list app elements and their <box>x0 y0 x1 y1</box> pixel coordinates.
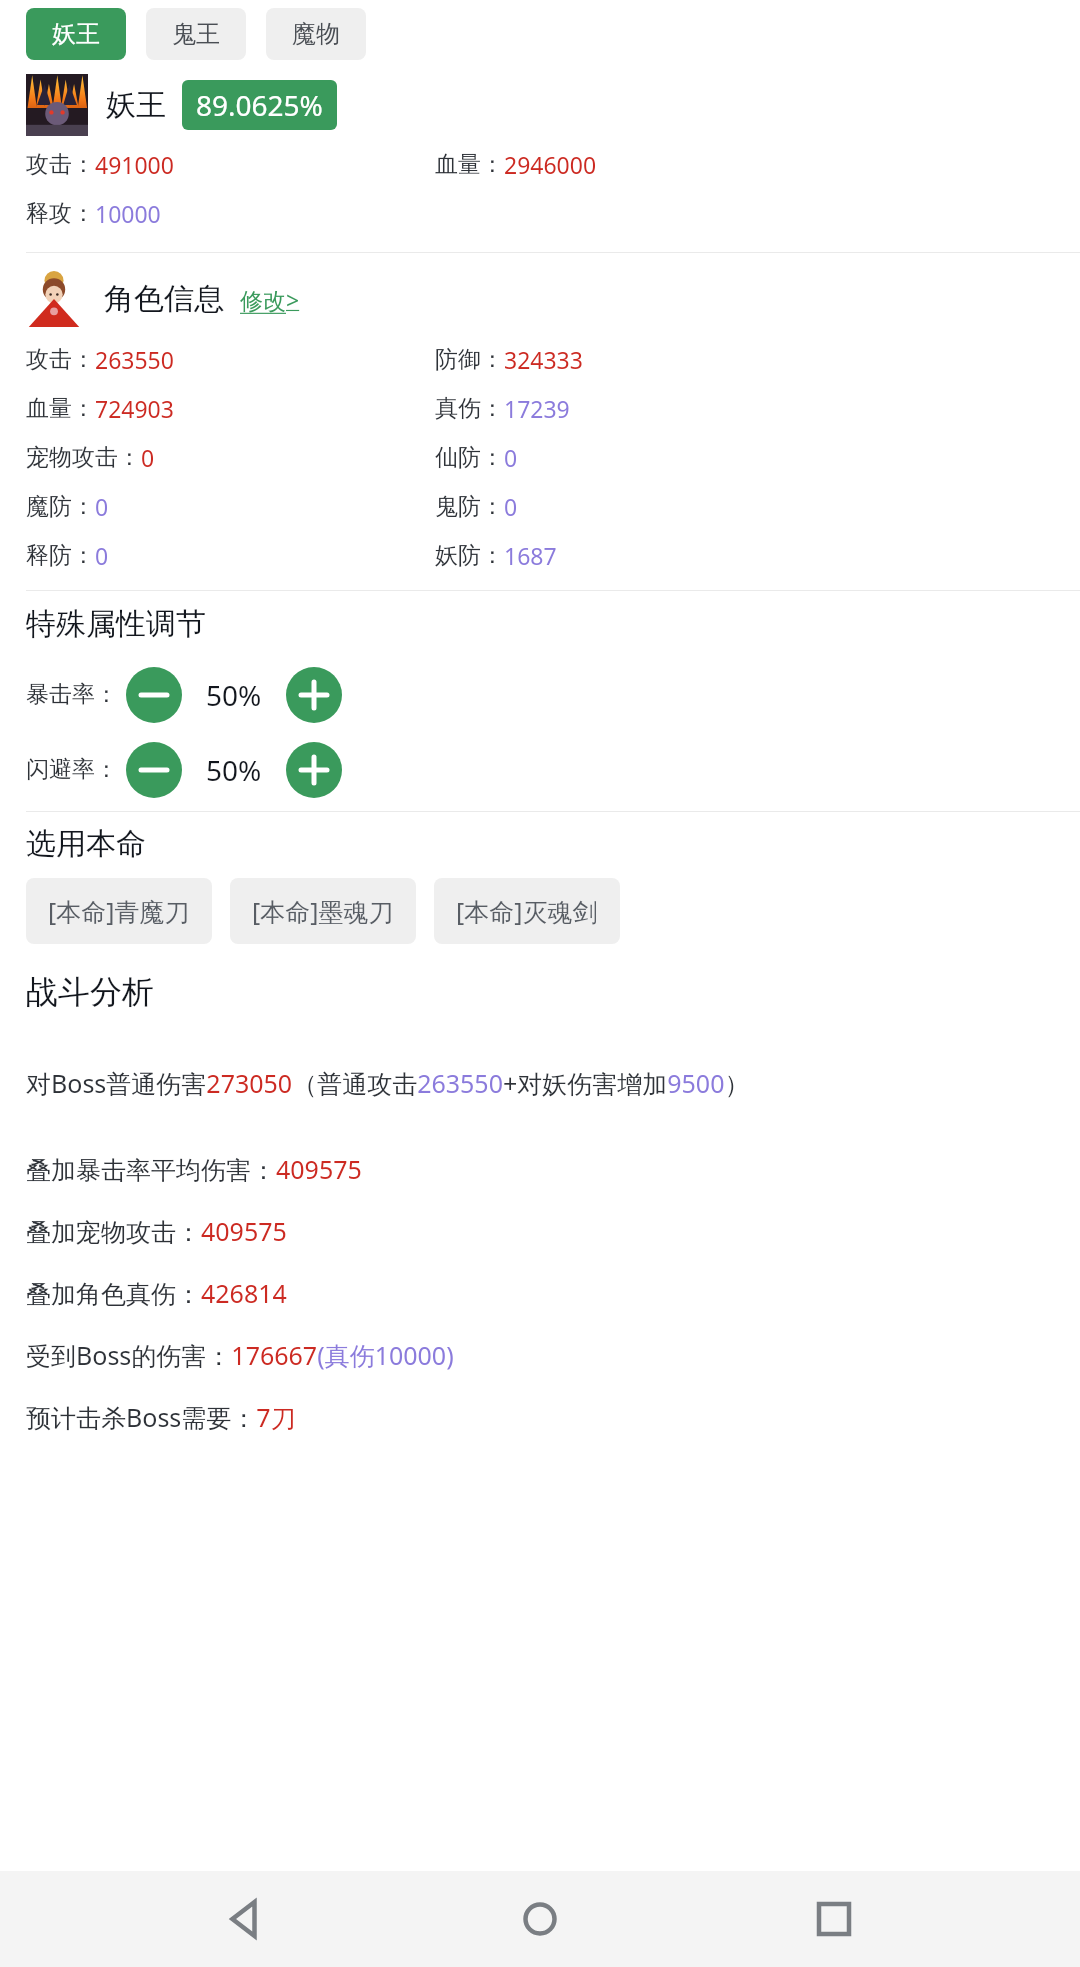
staticText: [本命]灭魂剑 <box>456 894 598 928</box>
staticText: 选用本命 <box>26 825 146 863</box>
staticText: [本命]墨魂刀 <box>252 894 394 928</box>
staticText: 闪避率： <box>26 755 118 784</box>
staticText: 724903 <box>95 393 174 424</box>
staticText: 预计击杀Boss需要：7刀 <box>26 1400 296 1434</box>
button[interactable]: Recents <box>786 1871 882 1967</box>
staticText: 叠加角色真伤：426814 <box>26 1276 287 1310</box>
staticText: 攻击： <box>26 150 95 179</box>
button[interactable]: [本命]灭魂剑 <box>434 878 620 944</box>
staticText: 释防： <box>26 541 95 570</box>
staticText: 叠加宠物攻击：409575 <box>26 1214 287 1248</box>
staticText: 魔防： <box>26 492 95 521</box>
staticText: 对Boss普通伤害273050（普通攻击263550+对妖伤害增加9500） <box>26 1066 750 1100</box>
button[interactable]: Decrease <box>126 742 182 798</box>
staticText: 特殊属性调节 <box>26 605 206 643</box>
button[interactable]: Decrease <box>126 667 182 723</box>
button[interactable]: [本命]青魔刀 <box>26 878 212 944</box>
staticText: 0 <box>141 442 155 473</box>
staticText: 受到Boss的伤害：176667(真伤10000) <box>26 1338 454 1372</box>
staticText: [本命]青魔刀 <box>48 894 190 928</box>
staticText: 妖王 <box>106 86 166 124</box>
staticText: 鬼防： <box>435 492 504 521</box>
staticText: 491000 <box>95 149 174 180</box>
button[interactable]: Increase <box>286 667 342 723</box>
staticText: 暴击率： <box>26 680 118 709</box>
button[interactable]: 鬼王 <box>146 8 246 60</box>
staticText: 释攻： <box>26 199 95 228</box>
staticText: 真伤： <box>435 394 504 423</box>
staticText: 1687 <box>504 540 557 571</box>
staticText: 叠加暴击率平均伤害：409575 <box>26 1152 362 1186</box>
staticText: 17239 <box>504 393 570 424</box>
button[interactable]: Increase <box>286 742 342 798</box>
staticText: 50% <box>206 676 262 714</box>
staticText: 血量： <box>435 150 504 179</box>
staticText: 防御： <box>435 345 504 374</box>
button[interactable]: 魔物 <box>266 8 366 60</box>
staticText: 仙防： <box>435 443 504 472</box>
staticText: 魔物 <box>292 19 340 49</box>
staticText: 攻击： <box>26 345 95 374</box>
staticText: 0 <box>504 491 518 522</box>
staticText: 10000 <box>95 198 161 229</box>
staticText: 宠物攻击： <box>26 443 141 472</box>
staticText: 324333 <box>504 344 583 375</box>
staticText: 0 <box>95 540 109 571</box>
staticText: 战斗分析 <box>26 972 154 1012</box>
staticText: 妖防： <box>435 541 504 570</box>
button[interactable]: 妖王 <box>26 8 126 60</box>
staticText: 2946000 <box>504 149 597 180</box>
button[interactable]: Home <box>492 1871 588 1967</box>
button[interactable]: 修改> <box>240 278 300 321</box>
staticText: 263550 <box>95 344 174 375</box>
staticText: 角色信息 <box>104 280 224 318</box>
staticText: 0 <box>504 442 518 473</box>
button[interactable]: [本命]墨魂刀 <box>230 878 416 944</box>
staticText: 血量： <box>26 394 95 423</box>
staticText: 89.0625% <box>196 86 323 124</box>
staticText: 50% <box>206 751 262 789</box>
button[interactable]: Back <box>198 1871 294 1967</box>
staticText: 修改> <box>240 284 300 315</box>
staticText: 妖王 <box>52 19 100 49</box>
staticText: 鬼王 <box>172 19 220 49</box>
staticText: 0 <box>95 491 109 522</box>
